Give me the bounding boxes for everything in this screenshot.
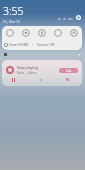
staticText: Fri, Mar 14 (3, 19, 20, 24)
button[interactable]: Toggle 3 (50, 26, 66, 39)
button[interactable]: Output (65, 77, 70, 82)
staticText: Smart HOME (9, 43, 29, 47)
button[interactable]: Pause (11, 77, 16, 82)
button[interactable]: Cast (59, 68, 78, 73)
staticText: Devices OFF (37, 43, 55, 47)
button[interactable]: Now playing (2, 60, 82, 86)
button[interactable]: Toggle 0 (2, 26, 18, 39)
button[interactable]: Toggle 1 (18, 26, 34, 39)
staticText: Artist — Album (17, 71, 37, 75)
staticText: • (32, 43, 34, 47)
staticText: 3:55 (3, 4, 24, 18)
button[interactable]: Toggle 2 (34, 26, 50, 39)
staticText: Now playing (17, 65, 38, 70)
button[interactable]: Settings (75, 15, 82, 20)
staticText: Cast (66, 69, 72, 73)
button[interactable]: Skip (38, 77, 43, 82)
button[interactable]: Toggle 4 (66, 26, 82, 39)
